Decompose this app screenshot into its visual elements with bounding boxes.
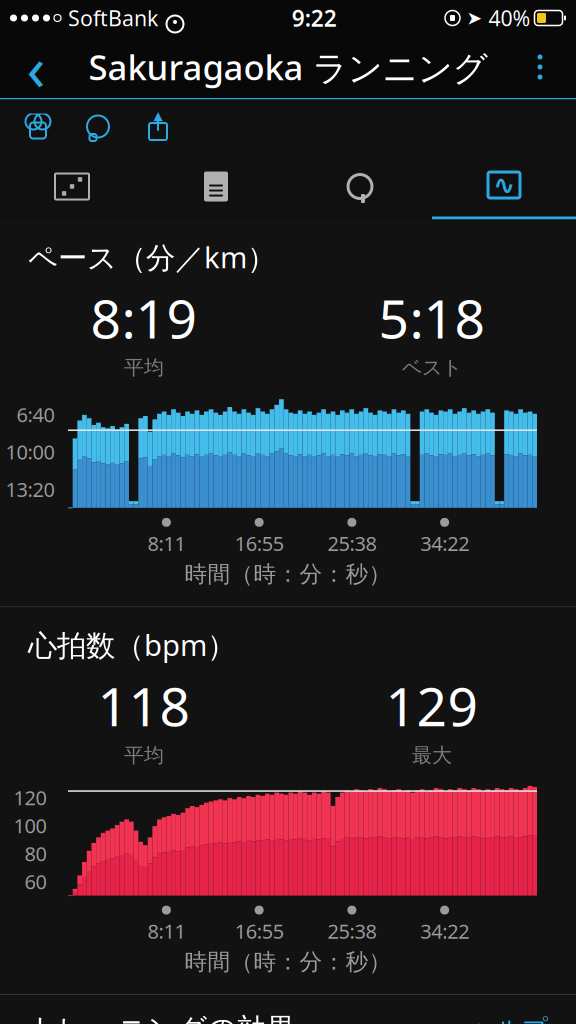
- staticText: 時間（時：分：秒）: [184, 948, 391, 976]
- staticText: ヘルプ: [470, 1013, 548, 1024]
- staticText: 25:38: [327, 530, 376, 556]
- button[interactable]: Graphs: [432, 153, 576, 219]
- staticText: 6:40: [16, 401, 54, 428]
- staticText: 時間（時：分：秒）: [184, 560, 391, 588]
- staticText: 13:20: [5, 476, 54, 502]
- staticText: トレーニングの効果: [28, 1011, 295, 1024]
- staticText: 10:00: [5, 439, 54, 465]
- staticText: 34:22: [420, 530, 469, 556]
- staticText: 8:19: [90, 282, 197, 353]
- staticText: 118: [97, 670, 190, 741]
- staticText: 25:38: [327, 918, 376, 944]
- button[interactable]: Map: [0, 153, 144, 219]
- staticText: 8:11: [147, 918, 185, 944]
- button[interactable]: トレーニングの効果: [0, 995, 576, 1024]
- staticText: ‹: [26, 26, 45, 108]
- staticText: 129: [385, 670, 478, 741]
- button[interactable]: Share: [128, 101, 188, 151]
- staticText: ▲: [153, 109, 162, 122]
- staticText: 9:22: [292, 3, 337, 33]
- staticText: 16:55: [235, 918, 284, 944]
- button[interactable]: Like: [8, 101, 68, 151]
- staticText: 100: [13, 812, 46, 839]
- staticText: 80: [24, 840, 46, 867]
- staticText: ペース（分／km）: [28, 237, 276, 276]
- button[interactable]: Laps: [288, 153, 432, 219]
- staticText: 平均: [124, 743, 164, 768]
- staticText: 平均: [124, 355, 164, 380]
- staticText: 5:18: [378, 282, 485, 353]
- staticText: 120: [13, 784, 46, 811]
- staticText: 8:11: [147, 530, 185, 556]
- button[interactable]: More options: [512, 39, 568, 95]
- staticText: 34:22: [420, 918, 469, 944]
- button[interactable]: Comment: [68, 101, 128, 151]
- staticText: ベスト: [402, 355, 462, 380]
- staticText: SoftBank: [68, 4, 158, 32]
- staticText: 40%: [488, 4, 530, 32]
- staticText: 最大: [412, 743, 452, 768]
- staticText: 16:55: [235, 530, 284, 556]
- staticText: ⋰: [60, 173, 84, 200]
- staticText: ∿: [493, 170, 515, 200]
- staticText: ➤: [466, 7, 482, 29]
- staticText: 60: [24, 868, 46, 895]
- staticText: Sakuragaoka ランニング: [88, 44, 487, 90]
- button[interactable]: Details: [144, 153, 288, 219]
- staticText: 心拍数（bpm）: [28, 625, 236, 664]
- button[interactable]: Back: [8, 39, 64, 95]
